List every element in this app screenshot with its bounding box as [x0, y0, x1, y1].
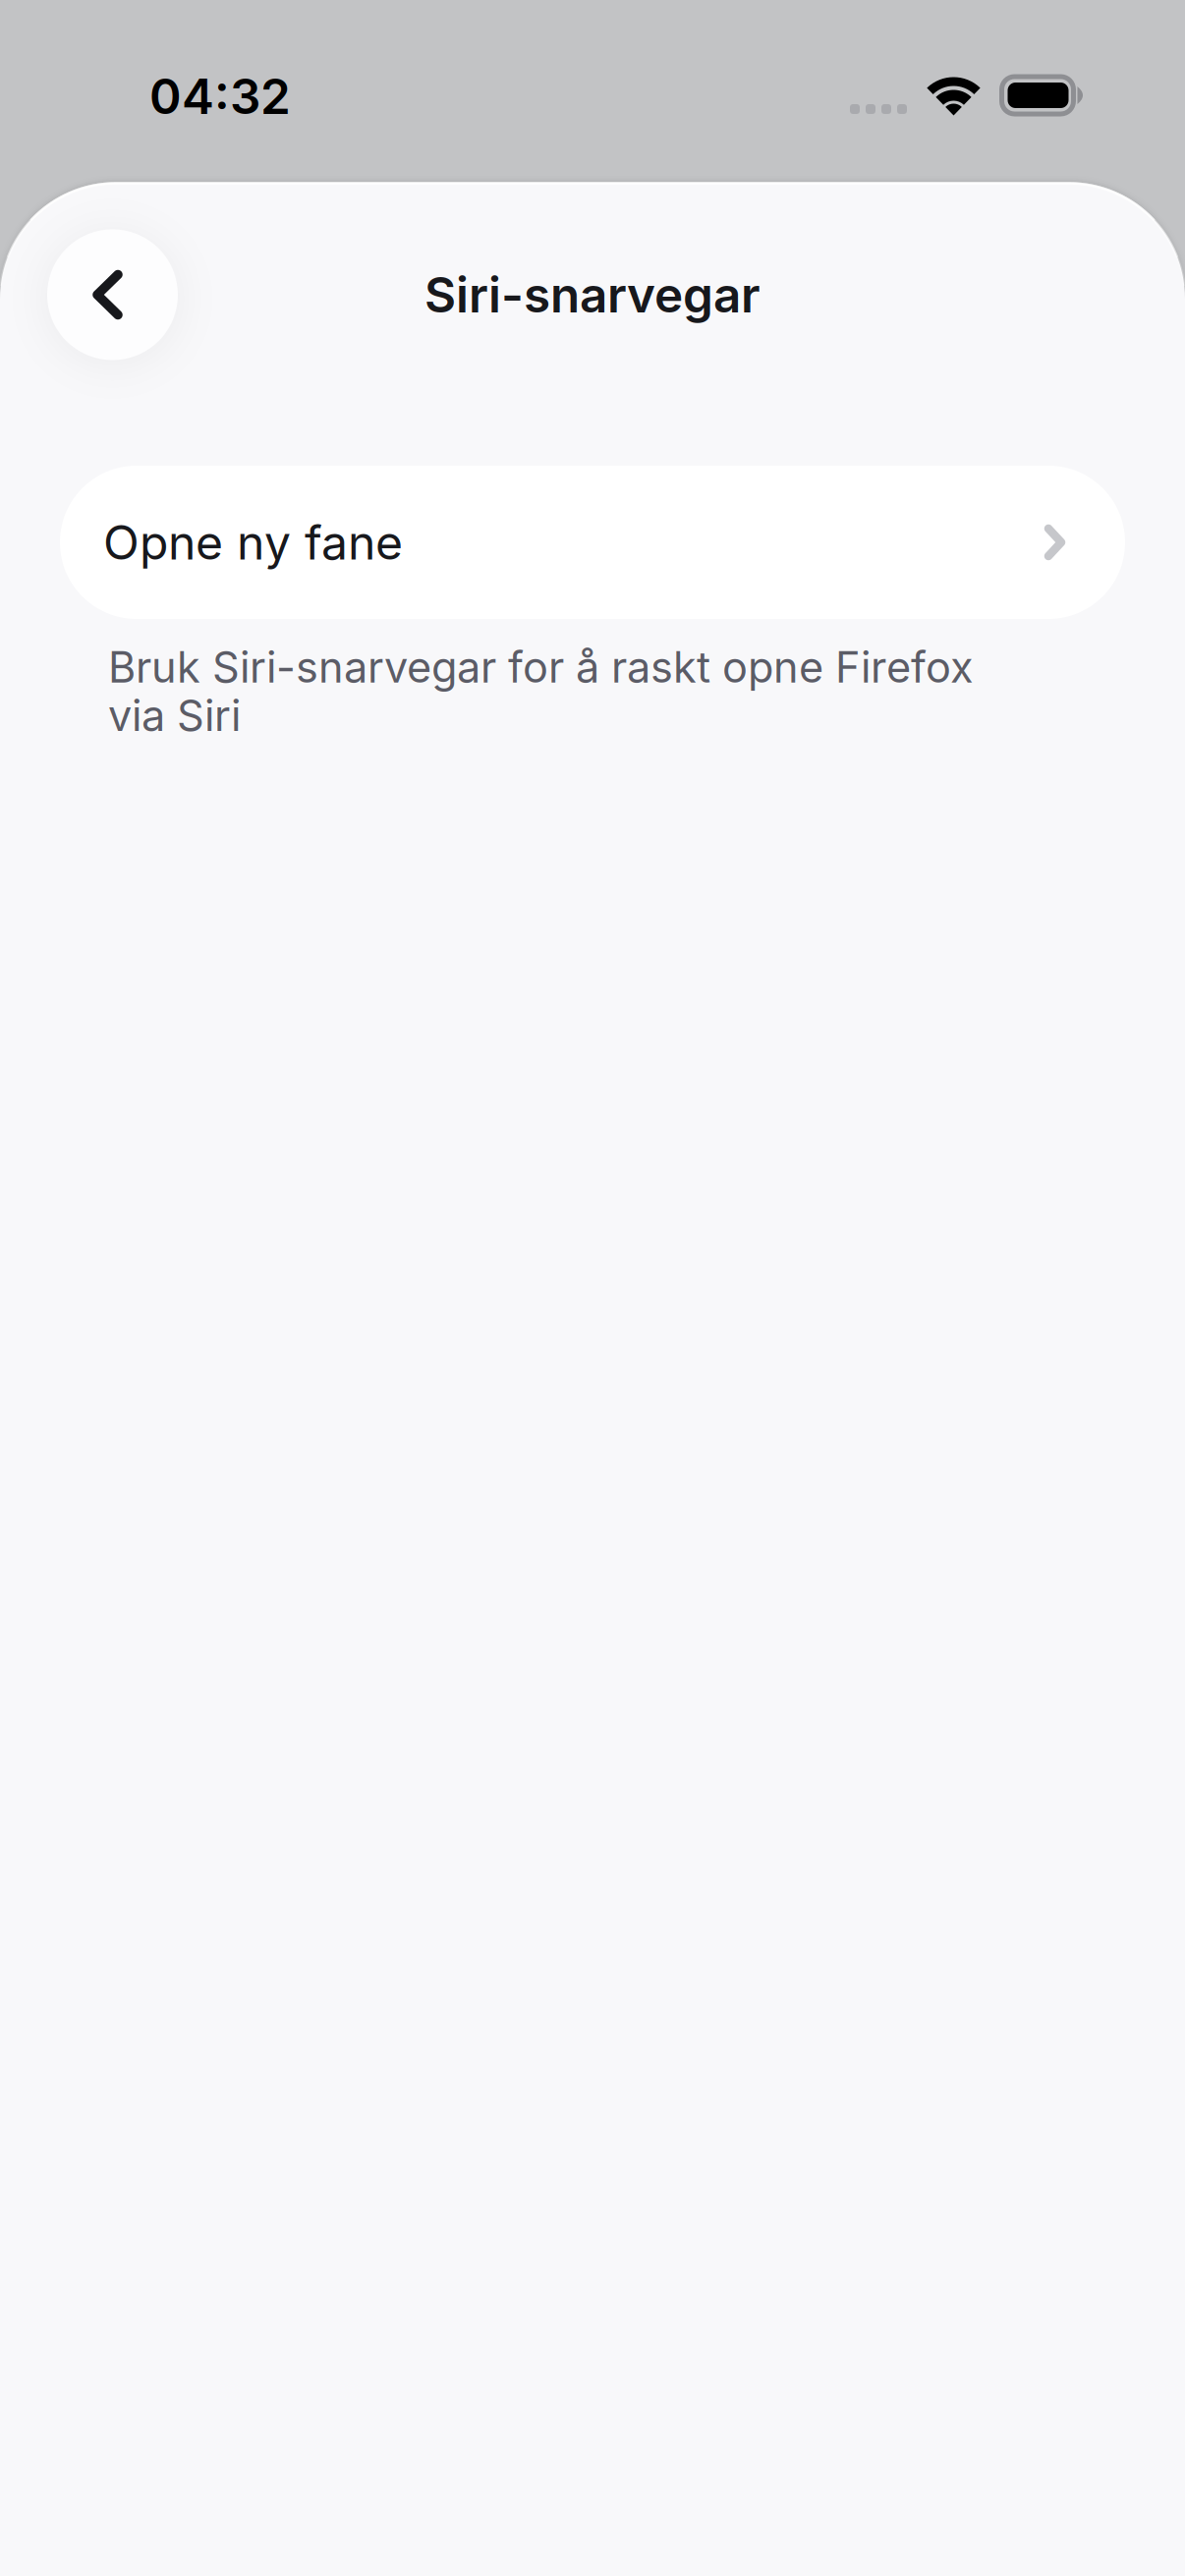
button[interactable]: Back — [47, 229, 178, 360]
staticText: Opne ny fane — [103, 514, 403, 571]
staticText: Bruk Siri-snarvegar for å raskt opne Fir… — [108, 642, 974, 741]
staticText: 04:32 — [149, 67, 291, 126]
button[interactable]: Opne ny fane — [60, 466, 1125, 619]
staticText: Siri-snarvegar — [424, 265, 761, 324]
